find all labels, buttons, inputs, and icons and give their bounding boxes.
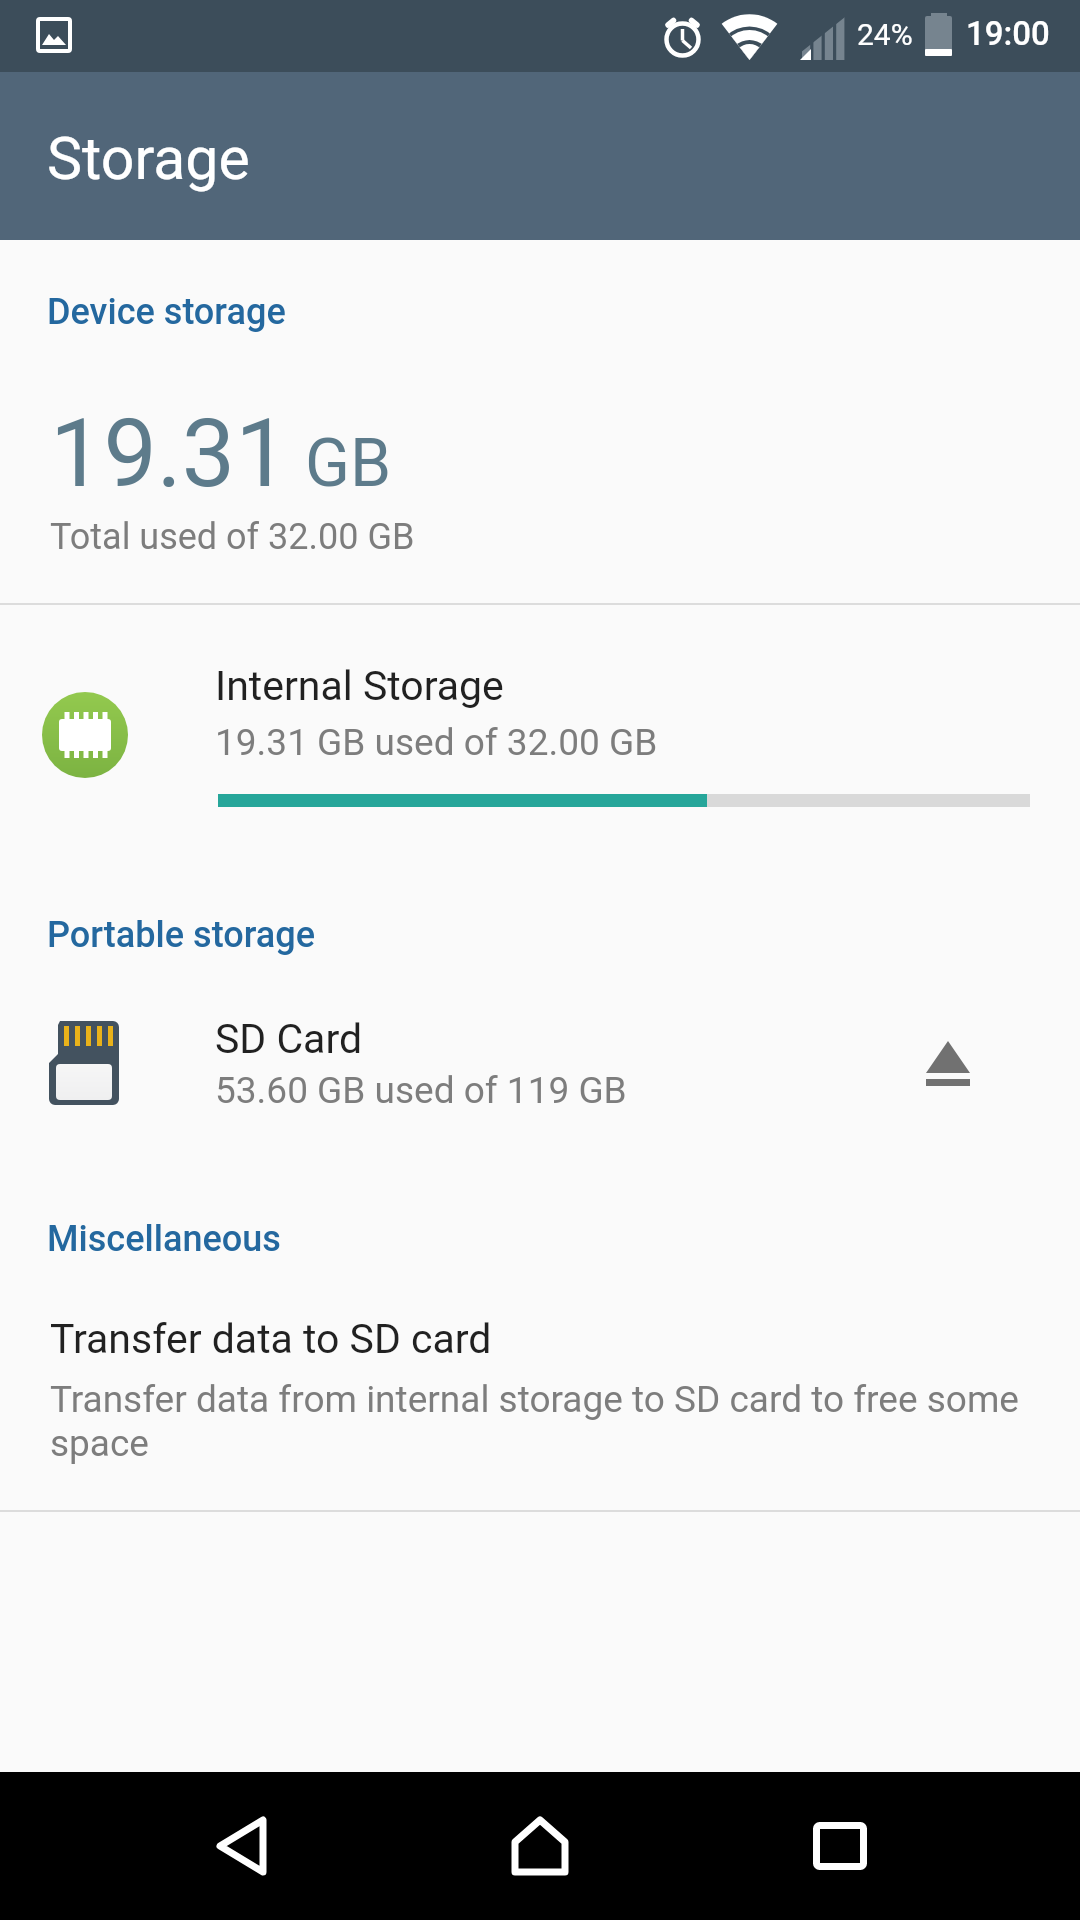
button[interactable]: SD Card [0,960,1080,1170]
staticText: Portable storage [47,914,315,956]
button[interactable] [476,1782,604,1910]
staticText: Device storage [47,291,286,333]
button[interactable] [178,1782,306,1910]
button[interactable] [908,1023,988,1103]
staticText: Miscellaneous [47,1218,281,1260]
staticText: Transfer data to SD card [50,1315,492,1363]
staticText: Total used of 32.00 GB [50,516,415,558]
button[interactable]: Transfer data to SD card [0,1280,1080,1510]
staticText: 53.60 GB used of 119 GB [215,1069,627,1112]
staticText: SD Card [215,1015,363,1063]
staticText: Storage [47,124,250,193]
staticText: 24% [857,17,913,52]
staticText: 19:00 [966,14,1050,53]
staticText: 19.31 GB used of 32.00 GB [215,721,658,764]
staticText: 19.31 GB [50,398,392,509]
staticText: Internal Storage [215,662,504,710]
staticText: Transfer data from internal storage to S… [50,1378,1055,1465]
button[interactable] [776,1782,904,1910]
button[interactable]: Internal Storage [0,604,1080,870]
